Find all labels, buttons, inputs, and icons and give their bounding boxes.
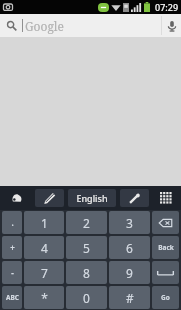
button[interactable]: English: [68, 189, 116, 207]
staticText: #: [126, 290, 134, 306]
staticText: *: [41, 290, 48, 306]
button[interactable]: 9: [109, 261, 150, 284]
button[interactable]: 8: [66, 261, 107, 284]
button[interactable]: *: [24, 286, 64, 309]
button[interactable]: Delete: [152, 211, 179, 234]
staticText: 8: [83, 265, 90, 281]
button[interactable]: Google: [0, 14, 181, 37]
button[interactable]: 0: [66, 286, 107, 309]
staticText: 7: [41, 265, 48, 281]
staticText: 0: [83, 290, 90, 306]
button[interactable]: Handwriting: [35, 189, 64, 207]
button[interactable]: ABC: [2, 286, 22, 309]
button[interactable]: Input mode: [0, 186, 33, 210]
staticText: Google: [25, 18, 65, 34]
staticText: 5: [83, 240, 90, 256]
button[interactable]: 2: [66, 211, 107, 234]
button[interactable]: Voice input: [120, 189, 149, 207]
staticText: 2: [83, 215, 90, 231]
staticText: 3: [126, 215, 133, 231]
button[interactable]: Voice search: [162, 14, 181, 37]
staticText: 6: [126, 240, 133, 256]
button[interactable]: Space: [152, 261, 179, 284]
staticText: 4: [41, 240, 48, 256]
staticText: Go: [161, 293, 170, 302]
button[interactable]: -: [2, 261, 22, 284]
button[interactable]: 3: [109, 211, 150, 234]
button[interactable]: .: [2, 211, 22, 234]
staticText: .: [11, 217, 14, 228]
button[interactable]: 1: [24, 211, 64, 234]
button[interactable]: +: [2, 236, 22, 259]
button[interactable]: 5: [66, 236, 107, 259]
button[interactable]: 4: [24, 236, 64, 259]
button[interactable]: 7: [24, 261, 64, 284]
staticText: 9: [126, 265, 133, 281]
staticText: ABC: [6, 293, 19, 302]
staticText: 07:29: [155, 1, 179, 13]
button[interactable]: #: [109, 286, 150, 309]
staticText: +: [10, 242, 15, 253]
button[interactable]: Back: [152, 236, 179, 259]
button[interactable]: Keyboard layout: [151, 186, 181, 210]
staticText: 1: [41, 215, 48, 231]
button[interactable]: 6: [109, 236, 150, 259]
button[interactable]: Go: [152, 286, 179, 309]
staticText: English: [76, 192, 108, 204]
staticText: Back: [158, 243, 174, 252]
staticText: -: [11, 267, 14, 278]
